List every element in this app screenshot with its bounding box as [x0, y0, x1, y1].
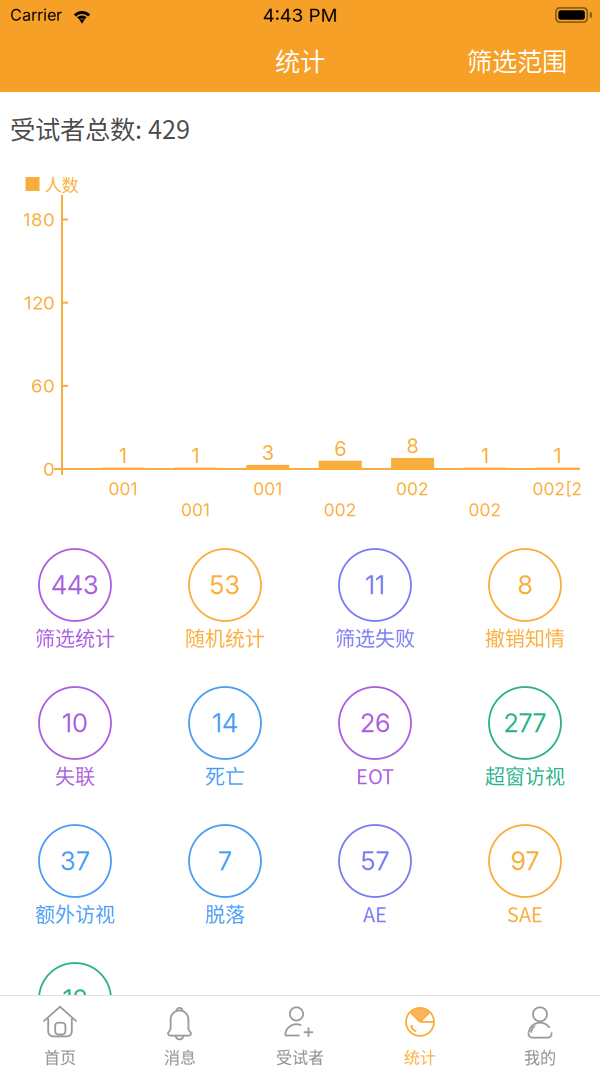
- staticText: 消息: [164, 1045, 196, 1067]
- staticText: 001: [108, 478, 137, 499]
- button[interactable]: 53: [150, 549, 300, 687]
- staticText: 我的: [524, 1045, 556, 1067]
- button[interactable]: 26: [300, 687, 450, 825]
- button[interactable]: 97: [450, 825, 600, 963]
- staticText: 277: [503, 708, 546, 738]
- staticText: AE: [363, 899, 387, 928]
- staticText: 8: [517, 570, 532, 600]
- staticText: 002: [468, 499, 501, 520]
- staticText: 受试者总数: 429: [10, 110, 190, 146]
- staticText: 26: [360, 708, 390, 738]
- staticText: Carrier: [10, 5, 62, 25]
- button[interactable]: 277: [450, 687, 600, 825]
- staticText: 筛选统计: [35, 623, 115, 652]
- staticText: 首页: [44, 1045, 76, 1067]
- button[interactable]: 我的: [480, 995, 600, 1067]
- staticText: 6: [334, 437, 346, 461]
- staticText: 1: [481, 443, 489, 468]
- staticText: 180: [23, 208, 55, 231]
- staticText: 1: [191, 443, 199, 468]
- button[interactable]: 14: [150, 687, 300, 825]
- staticText: 60: [31, 374, 55, 397]
- staticText: 1: [119, 443, 127, 468]
- staticText: 统计: [275, 42, 325, 78]
- button[interactable]: 7: [150, 825, 300, 963]
- button[interactable]: 首页: [0, 995, 120, 1067]
- staticText: 人数: [44, 171, 78, 197]
- staticText: 8: [407, 434, 419, 458]
- staticText: 002: [396, 478, 429, 499]
- staticText: 57: [360, 846, 389, 876]
- staticText: 死亡: [205, 761, 245, 790]
- staticText: 失联: [55, 761, 95, 790]
- staticText: 7: [218, 846, 232, 876]
- staticText: 筛选失败: [335, 623, 415, 652]
- button[interactable]: 11: [300, 549, 450, 687]
- staticText: 120: [24, 291, 55, 314]
- button[interactable]: 8: [450, 549, 600, 687]
- staticText: 超窗访视: [485, 761, 565, 790]
- button[interactable]: 10: [0, 687, 150, 825]
- staticText: 53: [209, 570, 240, 600]
- button[interactable]: 37: [0, 825, 150, 963]
- button[interactable]: 受试者: [240, 995, 360, 1067]
- staticText: 受试者: [276, 1045, 324, 1067]
- staticText: 001: [181, 499, 210, 520]
- button[interactable]: 消息: [120, 995, 240, 1067]
- staticText: EOT: [356, 761, 394, 790]
- staticText: 10: [62, 708, 88, 738]
- button[interactable]: 统计: [360, 995, 480, 1067]
- button[interactable]: 57: [300, 825, 450, 963]
- staticText: 0: [43, 458, 55, 480]
- staticText: 统计: [404, 1045, 436, 1067]
- staticText: 4:43 PM: [262, 4, 337, 26]
- staticText: 002: [324, 499, 357, 520]
- staticText: 撤销知情: [485, 623, 565, 652]
- button[interactable]: 443: [0, 549, 150, 687]
- staticText: 97: [510, 846, 539, 876]
- staticText: 3: [262, 441, 274, 465]
- staticText: 12: [62, 984, 87, 1014]
- staticText: SAE: [507, 899, 543, 928]
- staticText: 443: [51, 570, 99, 600]
- staticText: 筛选范围: [467, 42, 567, 78]
- staticText: 随机统计: [185, 623, 265, 652]
- staticText: 37: [60, 846, 90, 876]
- staticText: 001: [253, 478, 282, 499]
- staticText: 14: [212, 708, 238, 738]
- staticText: 1: [553, 443, 561, 468]
- staticText: 002[2: [532, 478, 582, 499]
- button[interactable]: 筛选范围: [453, 38, 600, 94]
- staticText: 额外访视: [35, 899, 115, 928]
- staticText: 脱落: [205, 899, 245, 928]
- button[interactable]: 12: [0, 963, 150, 1067]
- staticText: 11: [365, 570, 385, 600]
